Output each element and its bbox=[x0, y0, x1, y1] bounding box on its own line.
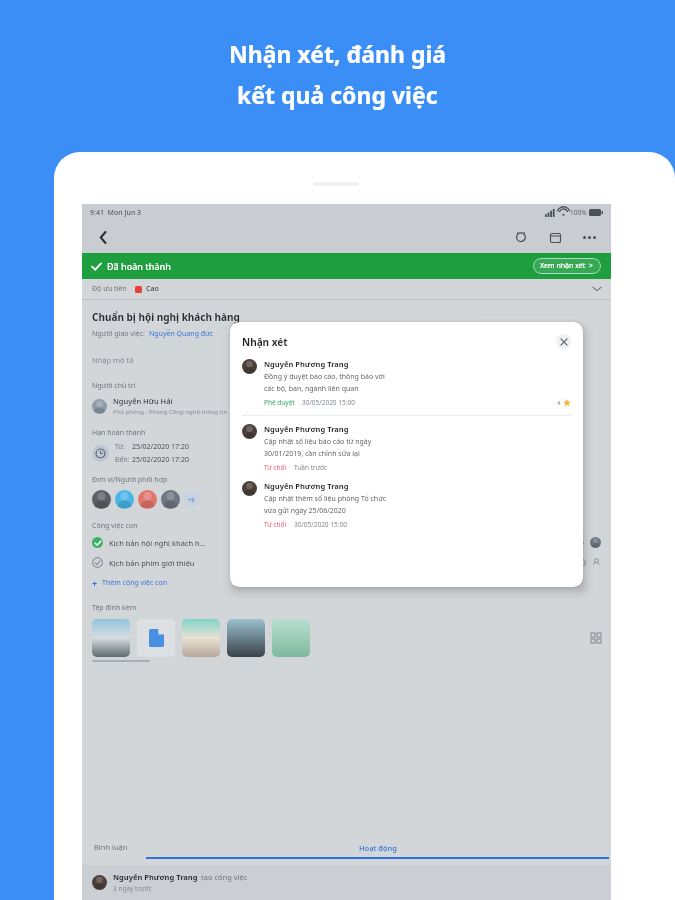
button[interactable]: Nguyễn Quang đức bbox=[149, 329, 214, 339]
button[interactable]: PDF file bbox=[137, 619, 175, 657]
button[interactable]: Kịch bản hội nghị khách h... bbox=[92, 537, 601, 548]
staticText: 9:41 Mon Jun 3 bbox=[90, 208, 142, 218]
button[interactable]: More options bbox=[577, 225, 601, 249]
staticText: Đồng ý duyệt báo cáo, thông báo với bbox=[264, 372, 385, 382]
staticText: Nguyễn Phương Trang bbox=[264, 481, 349, 491]
staticText: Từ chối bbox=[264, 463, 287, 472]
staticText: Nguyễn Phương Trang bbox=[264, 359, 349, 369]
button[interactable]: Hoạt động bbox=[144, 837, 611, 865]
button[interactable]: Độ ưu tiên bbox=[82, 279, 611, 299]
button[interactable]: Nguyễn Phương Trang bbox=[82, 865, 611, 900]
button[interactable]: Photo attachment bbox=[92, 619, 130, 657]
staticText: 100% bbox=[570, 208, 587, 217]
button[interactable]: Photo attachment bbox=[227, 619, 265, 657]
staticText: Nhận xét, đánh giá bbox=[229, 38, 447, 69]
button[interactable]: Photo attachment bbox=[272, 619, 310, 657]
staticText: Đơn vị/Người phối hợp bbox=[92, 475, 168, 485]
staticText: > bbox=[589, 261, 594, 271]
button[interactable]: Nguyễn Phương Trang bbox=[242, 424, 571, 472]
staticText: 4 bbox=[557, 399, 561, 407]
staticText: Cập nhật thêm số liệu phòng Tổ chức bbox=[264, 494, 387, 504]
button[interactable]: Grid view bbox=[591, 633, 601, 643]
staticText: Đến: bbox=[115, 455, 132, 464]
staticText: Tệp đính kèm bbox=[92, 603, 137, 613]
staticText: 30/05/2020 15:00 bbox=[294, 520, 347, 529]
staticText: Thêm công việc con bbox=[102, 578, 167, 588]
button[interactable]: Photo attachment bbox=[182, 619, 220, 657]
staticText: Công việc con bbox=[92, 521, 138, 531]
staticText: Hoạt động bbox=[359, 843, 397, 853]
button[interactable]: Bình luận bbox=[92, 836, 130, 865]
staticText: Phó phòng - Phòng Công nghệ thông tin bbox=[113, 408, 228, 416]
staticText: Từ chối bbox=[264, 520, 287, 529]
staticText: Chuẩn bị hội nghị khách hàng bbox=[92, 310, 240, 324]
staticText: Nguyễn Hữu Hải bbox=[113, 396, 173, 406]
button[interactable]: Calendar bbox=[543, 225, 567, 249]
staticText: Xem nhận xét bbox=[540, 261, 586, 271]
staticText: Người giao việc: bbox=[92, 329, 145, 339]
staticText: Hạn hoàn thành bbox=[92, 428, 146, 438]
button[interactable]: Close bbox=[556, 334, 571, 349]
staticText: 25/02/2020 17:20 bbox=[132, 442, 189, 452]
button[interactable]: Reminder bbox=[509, 225, 533, 249]
staticText: Nhận xét bbox=[242, 335, 288, 349]
button[interactable]: Xem nhận xét bbox=[533, 258, 601, 274]
staticText: 3 ngày trước bbox=[113, 884, 152, 893]
button[interactable]: Đã hoàn thành bbox=[82, 253, 611, 279]
staticText: tạo công việc bbox=[201, 872, 248, 882]
staticText: Bình luận bbox=[94, 842, 128, 852]
staticText: Độ ưu tiên bbox=[92, 284, 127, 294]
staticText: Người chủ trì bbox=[92, 381, 136, 391]
staticText: Nhập mô tả bbox=[92, 355, 134, 365]
staticText: Kịch bản phim giới thiệu bbox=[109, 558, 195, 568]
staticText: kết quả công việc bbox=[237, 79, 438, 110]
staticText: 30/05/2020 15:00 bbox=[302, 398, 355, 407]
staticText: +5 bbox=[188, 496, 195, 503]
button[interactable]: Nguyễn Phương Trang bbox=[242, 481, 571, 529]
staticText: 20/02/2019 bbox=[555, 539, 585, 546]
button[interactable]: Nguyễn Hữu Hải bbox=[92, 396, 228, 416]
staticText: Tuần trước bbox=[294, 463, 328, 472]
staticText: + bbox=[92, 577, 98, 589]
staticText: Nguyễn Phương Trang bbox=[113, 872, 198, 882]
staticText: các bộ, ban, ngành liên quan bbox=[264, 384, 359, 394]
button[interactable]: + bbox=[92, 577, 167, 589]
staticText: 30/01/2019, cần chỉnh sửa lại bbox=[264, 449, 360, 459]
button[interactable]: Kịch bản phim giới thiệu bbox=[92, 557, 601, 568]
staticText: Phê duyệt bbox=[264, 398, 295, 407]
staticText: Từ: bbox=[115, 442, 132, 451]
staticText: vừa gửi ngày 25/06/2020 bbox=[264, 506, 346, 516]
staticText: Cập nhật số liệu báo cáo từ ngày bbox=[264, 437, 372, 447]
staticText: Kịch bản hội nghị khách h... bbox=[109, 538, 206, 548]
staticText: Đã hoàn thành bbox=[107, 260, 171, 272]
staticText: Cao bbox=[146, 284, 159, 294]
staticText: Nguyễn Phương Trang bbox=[264, 424, 349, 434]
staticText: 25/02/2020 17:20 bbox=[132, 455, 189, 465]
button[interactable]: Nguyễn Phương Trang bbox=[242, 359, 571, 407]
button[interactable]: Back bbox=[92, 226, 114, 248]
